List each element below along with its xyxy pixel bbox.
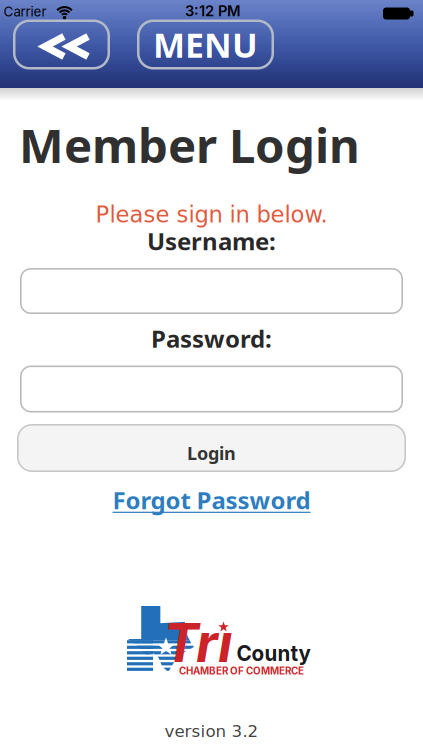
staticText: version 3.2	[164, 722, 258, 741]
button[interactable]: Back	[13, 19, 110, 69]
button[interactable]: Username	[20, 268, 403, 314]
button[interactable]: MENU	[137, 19, 274, 69]
staticText: Password:	[151, 322, 272, 355]
button[interactable]: Password	[20, 365, 403, 412]
staticText: Login	[187, 441, 236, 465]
button[interactable]: Login	[17, 424, 406, 472]
staticText: MENU	[153, 21, 258, 68]
staticText: Trı	[163, 610, 232, 675]
staticText: Forgot Password	[112, 484, 310, 516]
staticText: Username:	[147, 225, 276, 257]
staticText: County	[236, 641, 310, 666]
staticText: CHAMBER OF COMMERCE	[179, 665, 304, 677]
staticText: Member Login	[19, 112, 360, 177]
staticText: Please sign in below.	[95, 201, 327, 228]
staticText: Carrier	[3, 4, 46, 20]
button[interactable]: Forgot Password	[112, 484, 310, 516]
staticText: 3:12 PM	[185, 2, 241, 20]
